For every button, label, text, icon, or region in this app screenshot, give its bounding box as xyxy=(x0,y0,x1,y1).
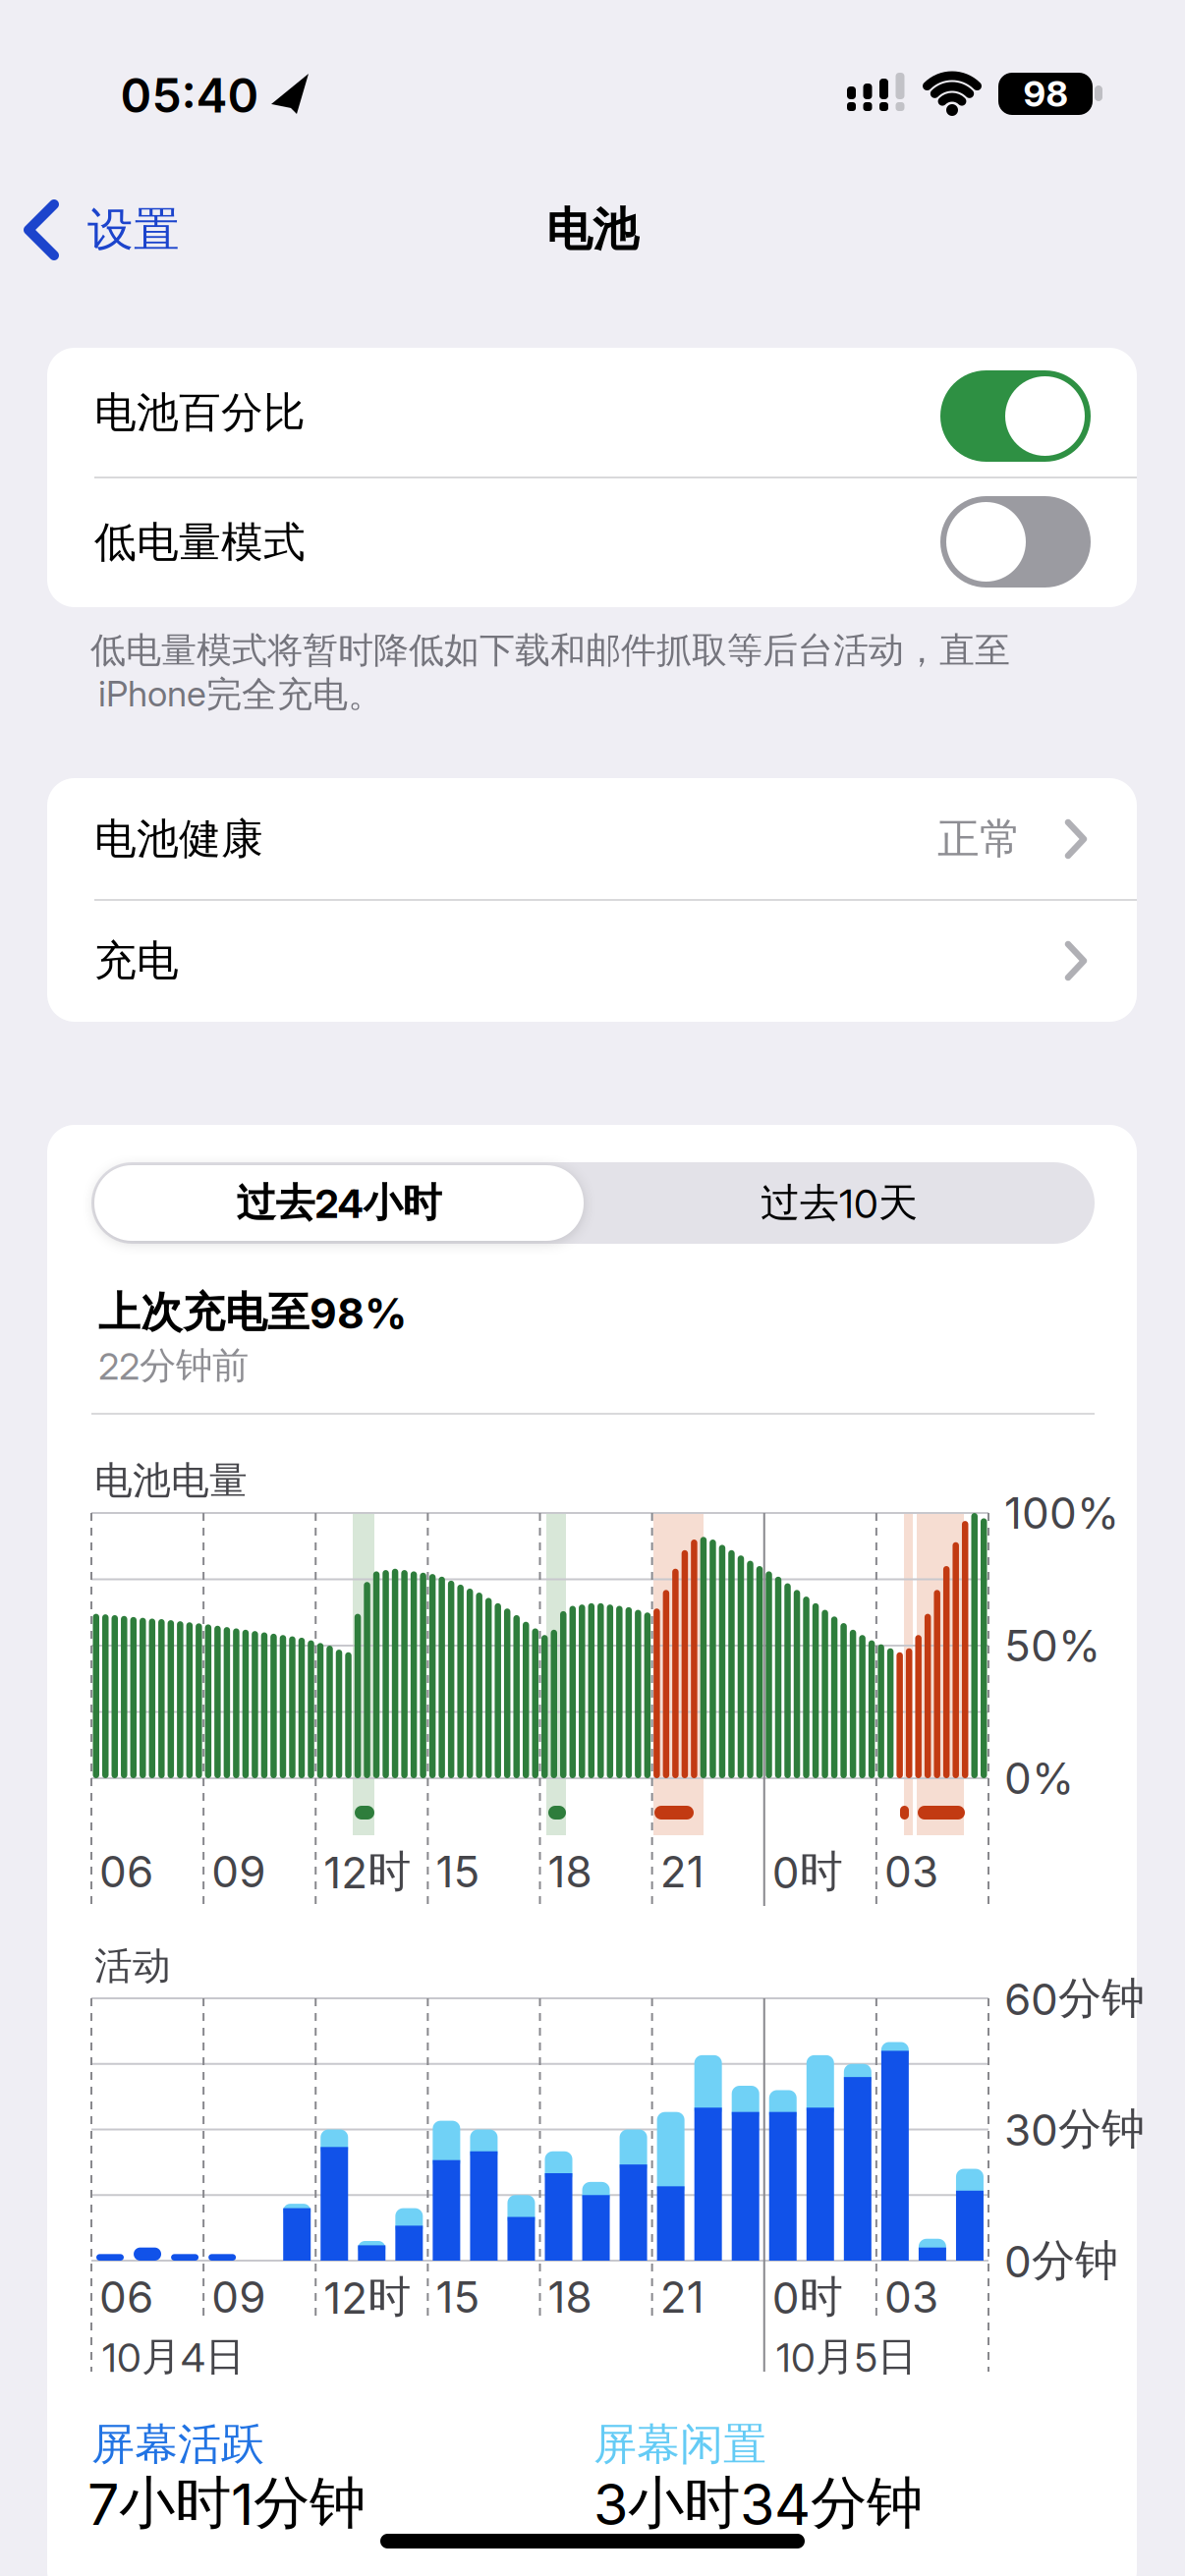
staticText: 22分钟前 xyxy=(98,1343,249,1388)
staticText: 充电 xyxy=(94,935,179,987)
staticText: 电池健康 xyxy=(94,813,263,865)
staticText: 低电量模式 xyxy=(94,517,306,568)
staticText: 0时 xyxy=(772,1845,843,1898)
staticText: 09 xyxy=(211,2271,265,2322)
staticText: 03 xyxy=(884,2271,938,2322)
staticText: 06 xyxy=(99,2271,153,2322)
staticText: 上次充电至98% xyxy=(98,1287,407,1338)
staticText: 15 xyxy=(436,1846,480,1897)
staticText: 0分钟 xyxy=(1004,2234,1118,2287)
button[interactable]: 过去10天 xyxy=(584,1165,1095,1241)
staticText: 12时 xyxy=(323,2270,411,2324)
staticText: 3小时34分钟 xyxy=(593,2469,923,2538)
staticText: 7小时1分钟 xyxy=(87,2469,366,2538)
staticText: 10月5日 xyxy=(776,2333,917,2381)
staticText: 活动 xyxy=(94,1943,171,1989)
staticText: 正常 xyxy=(937,813,1022,865)
staticText: 电池百分比 xyxy=(94,387,306,438)
staticText: 电池电量 xyxy=(94,1457,248,1504)
button[interactable]: 返回设置 xyxy=(25,202,180,257)
button[interactable]: 过去24小时 xyxy=(94,1165,584,1241)
staticText: 屏幕活跃 xyxy=(91,2418,264,2471)
staticText: 18 xyxy=(548,1846,592,1897)
staticText: 15 xyxy=(436,2271,480,2322)
button[interactable]: 电池健康 xyxy=(47,778,1137,900)
staticText: 98 xyxy=(1023,73,1068,115)
staticText: 05:40 xyxy=(120,67,259,123)
staticText: 100% xyxy=(1004,1487,1119,1538)
staticText: 12时 xyxy=(323,1845,411,1898)
staticText: 低电量模式将暂时降低如下载和邮件抓取等后台活动，直至 xyxy=(90,629,1010,672)
button[interactable]: 充电 xyxy=(47,900,1137,1022)
staticText: 06 xyxy=(99,1846,153,1897)
staticText: 0时 xyxy=(772,2270,843,2324)
staticText: 过去24小时 xyxy=(236,1179,442,1227)
staticText: 21 xyxy=(660,2271,704,2322)
staticText: 屏幕闲置 xyxy=(593,2418,766,2471)
staticText: 0% xyxy=(1004,1753,1074,1804)
staticText: 30分钟 xyxy=(1004,2102,1145,2156)
staticText: 过去10天 xyxy=(761,1179,918,1227)
staticText: 60分钟 xyxy=(1004,1972,1145,2025)
staticText: 18 xyxy=(548,2271,592,2322)
button[interactable]: 低电量模式 xyxy=(940,496,1091,588)
staticText: 21 xyxy=(660,1846,704,1897)
staticText: 设置 xyxy=(87,202,180,258)
staticText: 10月4日 xyxy=(102,2333,245,2381)
staticText: 电池 xyxy=(546,202,639,258)
staticText: 50% xyxy=(1004,1620,1100,1671)
button[interactable]: 电池百分比 xyxy=(940,370,1091,462)
staticText: 03 xyxy=(884,1846,938,1897)
staticText: iPhone完全充电。 xyxy=(98,673,383,717)
staticText: 09 xyxy=(211,1846,265,1897)
